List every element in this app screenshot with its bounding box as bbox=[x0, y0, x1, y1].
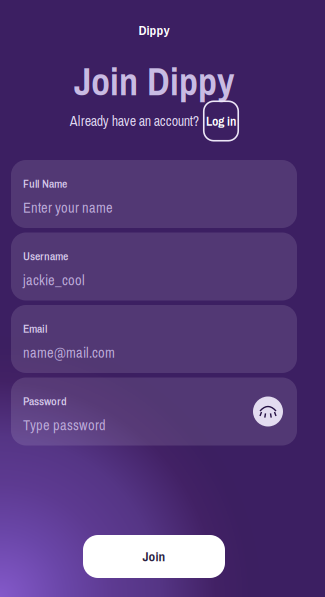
staticText: Full Name bbox=[23, 176, 67, 191]
staticText: Already have an account? bbox=[70, 111, 199, 130]
staticText: Join bbox=[142, 547, 165, 565]
staticText: Enter your name bbox=[23, 198, 113, 217]
staticText: Password bbox=[23, 393, 67, 409]
button[interactable]: Password bbox=[11, 377, 297, 445]
staticText: name@mail.com bbox=[23, 343, 115, 362]
staticText: Log in bbox=[206, 112, 236, 130]
staticText: Join Dippy bbox=[74, 56, 234, 107]
button[interactable]: Email bbox=[11, 305, 297, 373]
staticText: Username bbox=[23, 248, 68, 264]
button[interactable]: Log in bbox=[204, 101, 238, 141]
staticText: jackie_cool bbox=[23, 270, 85, 290]
staticText: Type password bbox=[23, 415, 106, 435]
button[interactable]: Full Name bbox=[11, 160, 297, 228]
staticText: Dippy bbox=[138, 21, 169, 39]
button[interactable]: Username bbox=[11, 232, 297, 300]
staticText: Email bbox=[23, 321, 47, 336]
button[interactable]: Join bbox=[83, 535, 225, 578]
